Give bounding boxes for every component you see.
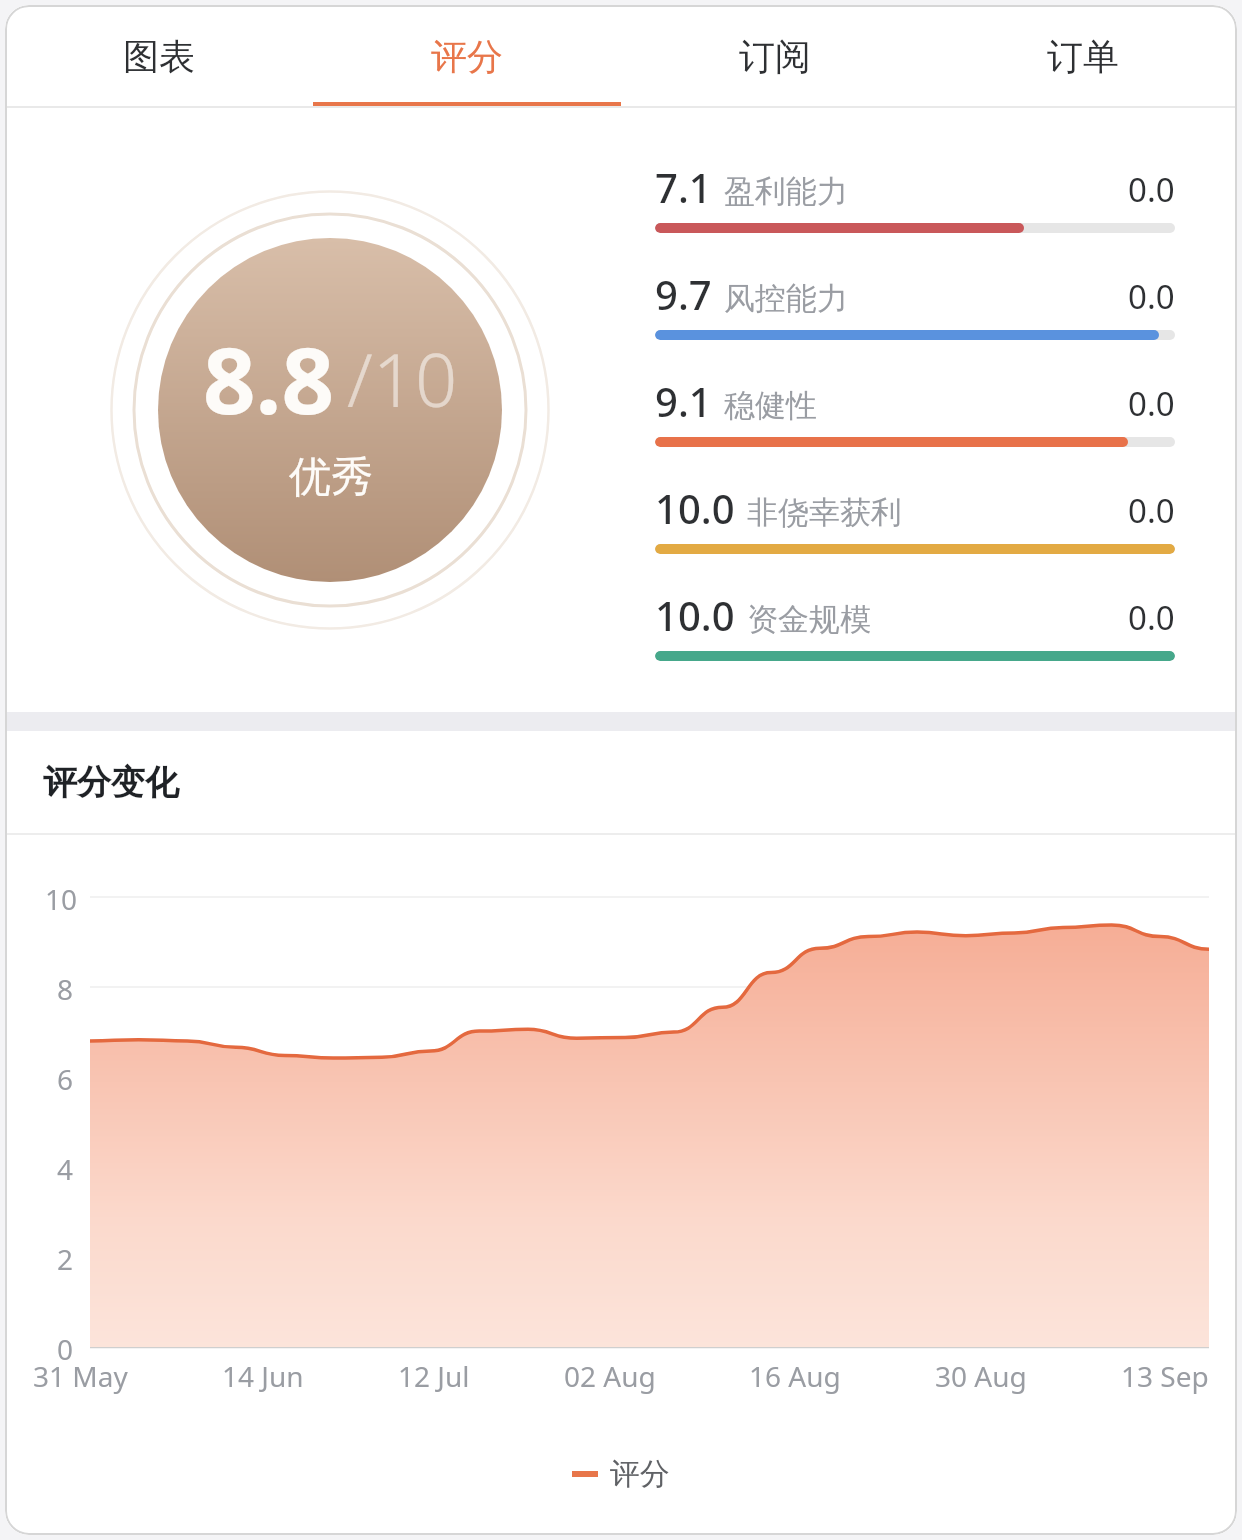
staticText: 6 [57,1060,74,1098]
staticText: 0.0 [1128,274,1175,319]
staticText: 风控能力 [724,279,848,318]
staticText: 稳健性 [724,386,817,425]
staticText: /10 [347,328,458,429]
staticText: 13 Sep [1121,1357,1209,1395]
button[interactable]: 10.0 [655,588,1175,661]
staticText: 2 [57,1240,74,1278]
staticText: 4 [57,1150,74,1188]
staticText: 图表 [123,34,195,79]
staticText: 31 May [33,1357,128,1395]
staticText: 资金规模 [747,600,871,639]
staticText: 盈利能力 [724,172,848,211]
button[interactable]: 评分 [572,1455,670,1493]
staticText: 02 Aug [564,1357,656,1395]
staticText: 0.0 [1128,167,1175,212]
button[interactable]: 评分 [313,5,621,108]
staticText: 14 Jun [222,1357,304,1395]
button[interactable]: 订阅 [621,5,929,108]
button[interactable]: 9.1 [655,374,1175,447]
staticText: 评分 [610,1455,670,1493]
staticText: 0.0 [1128,488,1175,533]
button[interactable]: 图表 [5,5,313,108]
staticText: 10.0 [655,481,735,535]
staticText: 评分 [431,34,503,79]
button[interactable]: 7.1 [655,160,1175,233]
staticText: 0 [57,1330,74,1368]
staticText: 10 [45,880,78,918]
staticText: 9.1 [655,374,712,428]
staticText: 评分变化 [43,761,179,804]
staticText: 12 Jul [398,1357,470,1395]
staticText: 优秀 [289,451,373,504]
staticText: 8 [57,970,74,1008]
staticText: 订单 [1047,34,1119,79]
staticText: 16 Aug [749,1357,841,1395]
staticText: 10.0 [655,588,735,642]
staticText: 30 Aug [935,1357,1027,1395]
staticText: 0.0 [1128,381,1175,426]
staticText: 0.0 [1128,595,1175,640]
staticText: 8.8 [203,316,335,441]
staticText: 7.1 [655,160,712,214]
button[interactable]: 10.0 [655,481,1175,554]
button[interactable]: 订单 [929,5,1237,108]
button[interactable]: 9.7 [655,267,1175,340]
staticText: 9.7 [655,267,712,321]
staticText: 非侥幸获利 [747,493,902,532]
staticText: 订阅 [739,34,811,79]
